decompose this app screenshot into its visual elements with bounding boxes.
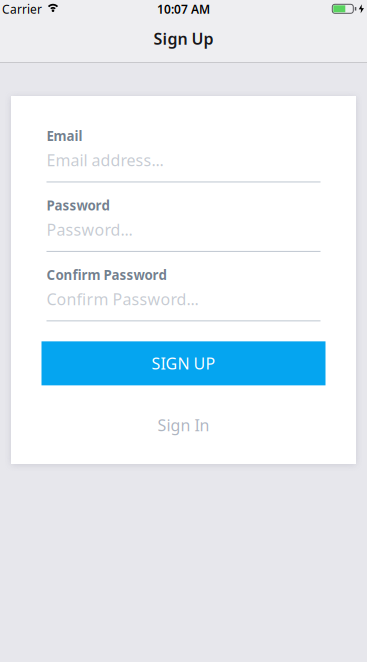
- staticText: Confirm Password: [46, 266, 166, 284]
- staticText: Email address...: [46, 149, 163, 171]
- button[interactable]: SIGN UP: [41, 341, 325, 385]
- button[interactable]: Sign In: [157, 414, 209, 436]
- staticText: Confirm Password...: [46, 288, 198, 309]
- staticText: Email: [46, 127, 82, 145]
- staticText: Password...: [46, 219, 132, 240]
- button[interactable]: Confirm Password...: [46, 284, 320, 321]
- staticText: Carrier: [2, 1, 42, 17]
- staticText: Sign Up: [153, 28, 213, 49]
- button[interactable]: Password...: [46, 214, 320, 252]
- staticText: Password: [46, 196, 109, 214]
- staticText: SIGN UP: [151, 353, 215, 374]
- staticText: 10:07 AM: [157, 1, 210, 17]
- staticText: Sign In: [157, 414, 209, 436]
- button[interactable]: Email address...: [46, 145, 320, 182]
